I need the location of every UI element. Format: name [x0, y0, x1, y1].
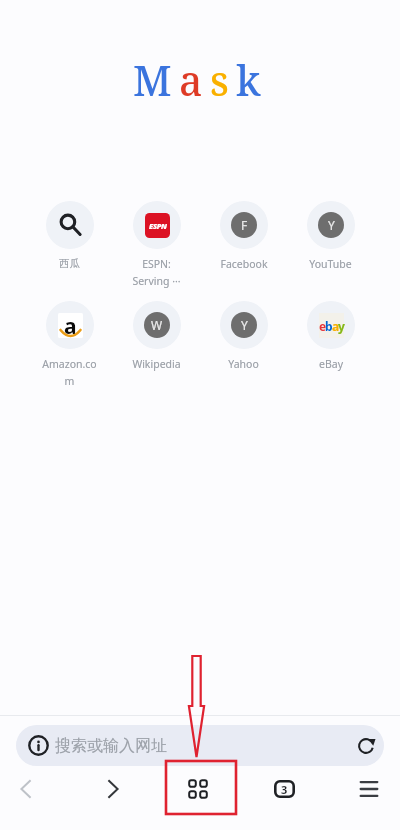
staticText: eBay	[319, 357, 343, 371]
button[interactable]: Tabs	[244, 762, 324, 816]
staticText: s	[210, 52, 236, 108]
staticText: y	[338, 318, 344, 334]
button[interactable]: W	[113, 301, 200, 371]
button[interactable]: Forward	[73, 762, 153, 816]
staticText: 3	[281, 782, 288, 797]
button[interactable]: Back	[0, 762, 66, 816]
staticText: W	[151, 317, 163, 333]
button[interactable]: 搜索或输入网址	[16, 725, 384, 766]
staticText: e	[319, 318, 325, 334]
button[interactable]: 西瓜	[26, 201, 113, 270]
button[interactable]: e	[287, 301, 374, 371]
staticText: 搜索或输入网址	[55, 736, 167, 756]
button[interactable]: Menu	[329, 762, 400, 816]
button[interactable]: Y	[287, 201, 374, 271]
staticText: Amazon.com	[41, 357, 98, 388]
staticText: ESPN	[149, 221, 167, 231]
staticText: YouTube	[309, 257, 352, 271]
staticText: a	[64, 313, 77, 337]
staticText: a	[332, 318, 338, 334]
staticText: Wikipedia	[132, 357, 181, 371]
staticText: Y	[241, 317, 248, 333]
staticText: Y	[328, 217, 335, 233]
staticText: ESPN: Serving ···	[128, 257, 185, 288]
staticText: b	[325, 318, 332, 334]
button[interactable]: a	[26, 301, 113, 388]
button[interactable]: ESPN	[113, 201, 200, 288]
staticText: 西瓜	[59, 257, 80, 270]
staticText: Yahoo	[228, 357, 259, 371]
button[interactable]: F	[200, 201, 287, 271]
staticText: k	[236, 52, 268, 108]
button[interactable]: Y	[200, 301, 287, 371]
button[interactable]: Home grid	[158, 762, 238, 816]
staticText: M	[133, 52, 179, 108]
staticText: Facebook	[220, 257, 268, 271]
staticText: a	[179, 52, 210, 108]
other: Reload	[357, 737, 375, 755]
staticText: F	[241, 217, 248, 233]
